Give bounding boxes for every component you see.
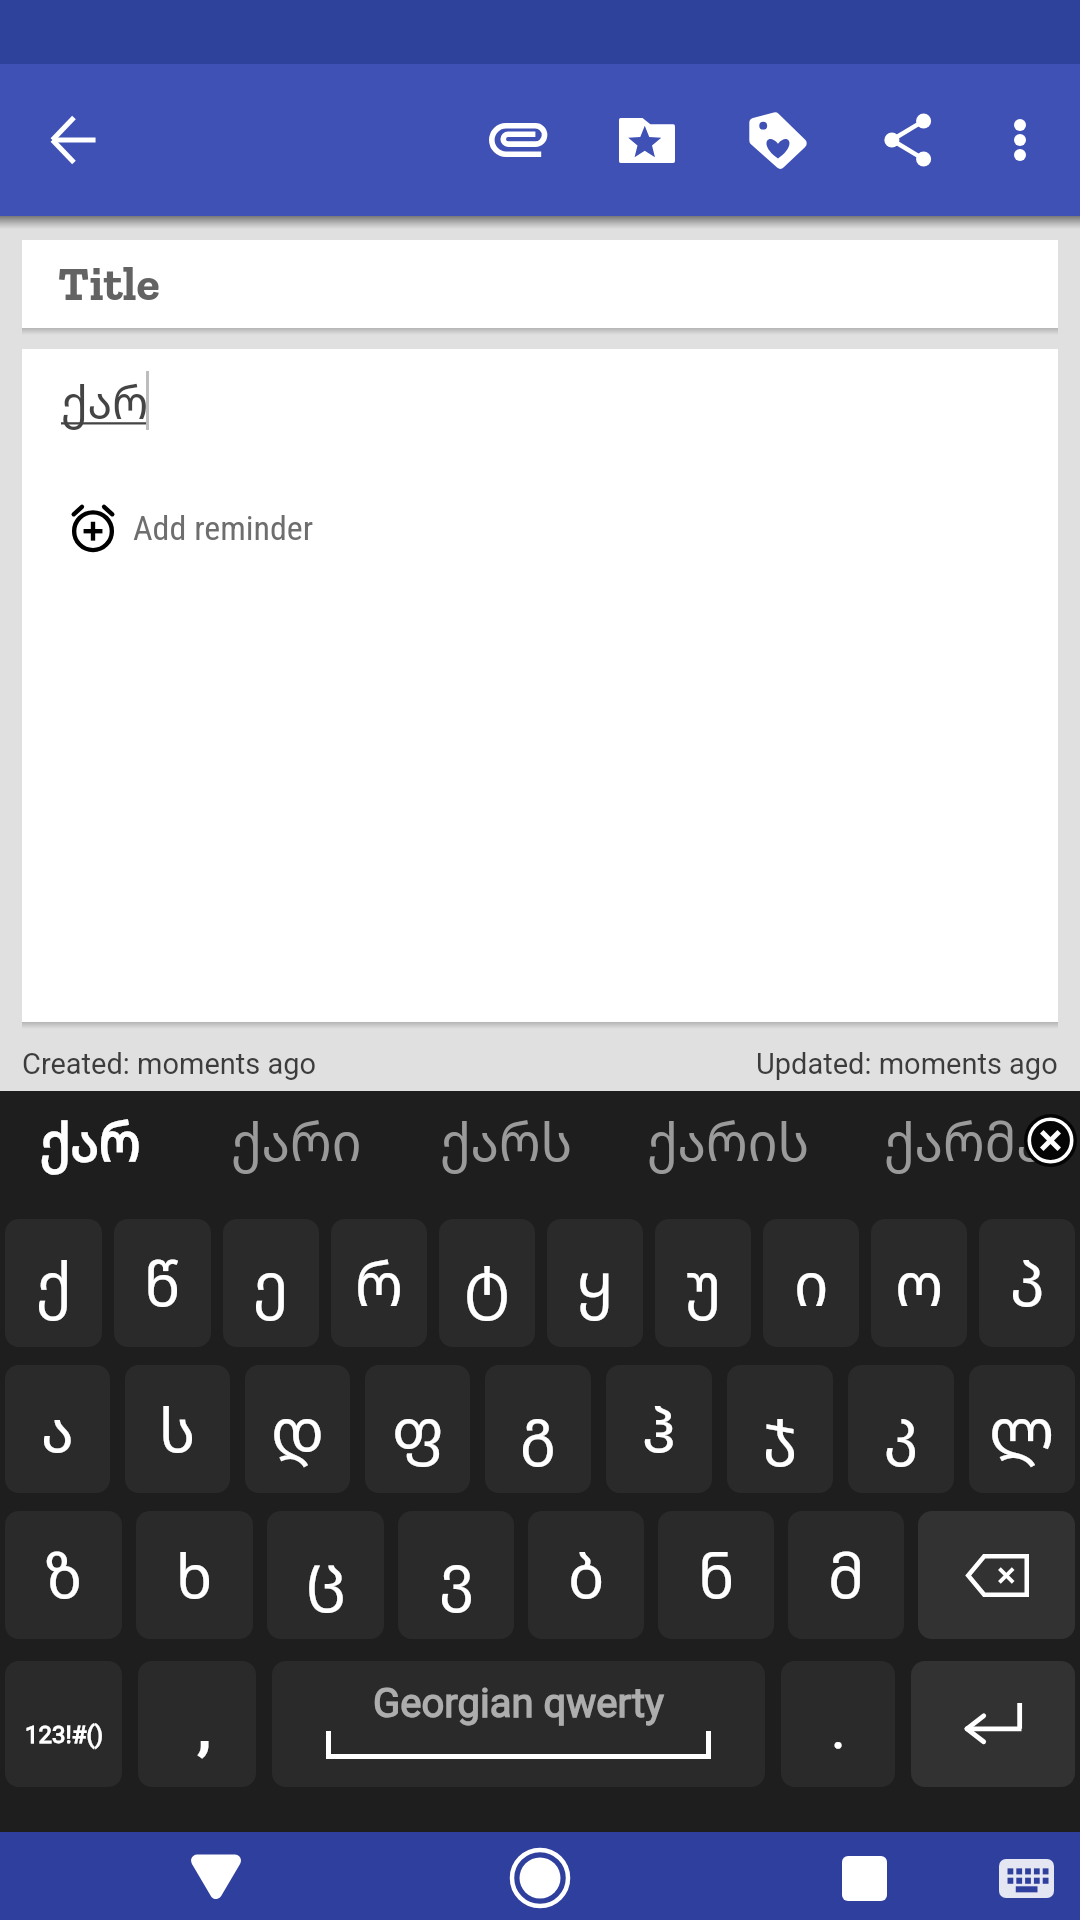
staticText: ს (159, 1388, 196, 1470)
staticText: ხ (176, 1534, 213, 1616)
staticText: Created: moments ago (22, 1047, 317, 1081)
button[interactable]: Close suggestions (1019, 1109, 1080, 1171)
staticText: გ (520, 1388, 556, 1470)
button[interactable]: ე (223, 1219, 319, 1347)
button[interactable]: ტ (439, 1219, 535, 1347)
staticText: ზ (45, 1534, 83, 1616)
staticText: ჰ (642, 1388, 677, 1470)
staticText: ბ (568, 1534, 605, 1616)
staticText: ქარ (40, 1105, 141, 1176)
staticText: ქ (36, 1242, 72, 1324)
staticText: ე (253, 1242, 289, 1324)
button[interactable]: ს (125, 1365, 230, 1493)
button[interactable]: ქარმა (884, 1091, 1045, 1204)
staticText: Add reminder (133, 508, 314, 548)
staticText: ქარს (440, 1105, 573, 1176)
button[interactable]: მ (788, 1511, 904, 1639)
staticText: წ (144, 1242, 181, 1324)
button[interactable]: More options (954, 74, 1080, 206)
button[interactable]: ზ (5, 1511, 122, 1639)
button[interactable]: Switch keyboard (982, 1834, 1070, 1920)
staticText: , (198, 1691, 211, 1764)
button[interactable]: Title (22, 240, 1058, 328)
staticText: ო (895, 1242, 944, 1324)
staticText: ც (306, 1534, 346, 1616)
button[interactable]: . (781, 1661, 895, 1787)
button[interactable]: ქარ (40, 1091, 141, 1204)
button[interactable]: ყ (547, 1219, 643, 1347)
staticText: პ (1010, 1242, 1045, 1324)
button[interactable]: Attach file (452, 74, 584, 206)
staticText: ფ (392, 1388, 444, 1470)
staticText: 123!#() (25, 1721, 103, 1749)
staticText: ქარი (231, 1105, 362, 1176)
button[interactable]: ვ (398, 1511, 514, 1639)
staticText: Title (58, 255, 160, 313)
button[interactable]: ა (5, 1365, 110, 1493)
button[interactable]: Back (172, 1834, 260, 1920)
button[interactable]: ლ (969, 1365, 1075, 1493)
button[interactable]: Notebook (581, 74, 713, 206)
button[interactable]: ჰ (606, 1365, 712, 1493)
button[interactable]: ჯ (727, 1365, 833, 1493)
button[interactable]: Space (272, 1661, 765, 1787)
staticText: ლ (989, 1388, 1055, 1470)
button[interactable]: Share (842, 74, 974, 206)
staticText: უ (685, 1242, 722, 1324)
button[interactable]: ქ (5, 1219, 102, 1347)
button[interactable]: 123!#() (5, 1661, 122, 1787)
button[interactable]: პ (979, 1219, 1075, 1347)
button[interactable]: , (138, 1661, 256, 1787)
staticText: ვ (439, 1534, 474, 1616)
button[interactable]: ქარი (231, 1091, 362, 1204)
button[interactable]: კ (848, 1365, 954, 1493)
button[interactable]: ბ (528, 1511, 644, 1639)
staticText: მ (828, 1534, 865, 1616)
staticText: დ (271, 1388, 324, 1470)
button[interactable]: Navigate up (7, 74, 139, 206)
button[interactable]: წ (114, 1219, 211, 1347)
staticText: ქარმა (884, 1105, 1045, 1176)
staticText: ყ (577, 1242, 613, 1324)
button[interactable]: ც (267, 1511, 384, 1639)
button[interactable]: დ (245, 1365, 350, 1493)
staticText: რ (355, 1242, 404, 1324)
staticText: ნ (698, 1534, 735, 1616)
button[interactable]: ო (871, 1219, 967, 1347)
button[interactable]: Enter (911, 1661, 1075, 1787)
button[interactable]: ნ (658, 1511, 774, 1639)
button[interactable]: რ (331, 1219, 427, 1347)
staticText: ჯ (763, 1388, 798, 1470)
button[interactable]: ი (763, 1219, 859, 1347)
button[interactable]: გ (485, 1365, 591, 1493)
staticText: . (832, 1703, 845, 1759)
button[interactable]: ქარის (647, 1091, 810, 1204)
button[interactable]: უ (655, 1219, 751, 1347)
button[interactable]: ქარს (440, 1091, 573, 1204)
staticText: ა (41, 1388, 74, 1470)
button[interactable]: Tags (712, 74, 844, 206)
staticText: ქარის (647, 1105, 810, 1176)
button[interactable]: ხ (136, 1511, 253, 1639)
staticText: Updated: moments ago (756, 1047, 1058, 1081)
button[interactable]: ფ (365, 1365, 470, 1493)
button[interactable]: Delete (918, 1511, 1075, 1639)
staticText: ქარ (61, 371, 149, 432)
button[interactable]: Add reminder (70, 503, 314, 550)
button[interactable]: ქარ (22, 349, 1058, 1022)
button[interactable]: Recent apps (820, 1834, 908, 1920)
staticText: Georgian qwerty (373, 1680, 664, 1727)
staticText: ი (794, 1242, 829, 1324)
staticText: ტ (464, 1242, 511, 1324)
staticText: კ (884, 1388, 918, 1470)
button[interactable]: Home (496, 1834, 584, 1920)
